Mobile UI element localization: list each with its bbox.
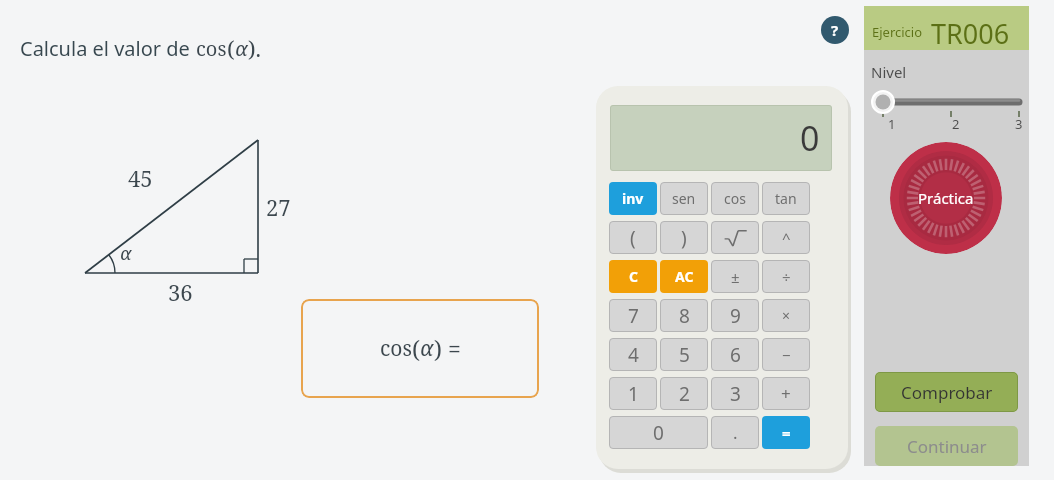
button[interactable]: 4 — [609, 338, 657, 371]
staticText: 2 — [679, 381, 690, 407]
staticText: 6 — [730, 342, 741, 368]
button[interactable]: Ayuda — [821, 16, 849, 44]
button[interactable]: 3 — [711, 377, 759, 410]
staticText: 3 — [730, 381, 741, 407]
staticText: ^ — [782, 228, 791, 248]
staticText: cos — [380, 334, 412, 363]
staticText: sen — [672, 189, 696, 208]
staticText: α — [120, 241, 132, 266]
button[interactable]: 8 — [660, 299, 708, 332]
staticText: ) — [681, 225, 687, 251]
staticText: C — [629, 267, 638, 286]
button[interactable]: C — [609, 260, 657, 293]
button[interactable]: ) — [660, 221, 708, 254]
staticText: 9 — [730, 303, 741, 329]
staticText: ( — [412, 333, 420, 364]
staticText: Práctica — [918, 188, 974, 208]
staticText: 45 — [128, 163, 153, 193]
staticText: ± — [731, 267, 740, 287]
staticText: α — [235, 35, 248, 62]
button[interactable]: − — [762, 338, 810, 371]
staticText: AC — [675, 267, 694, 286]
staticText: Ejercicio — [872, 23, 923, 41]
button[interactable]: + — [762, 377, 810, 410]
button[interactable]: ^ — [762, 221, 810, 254]
staticText: 0 — [800, 115, 820, 161]
staticText: 1 — [628, 381, 639, 407]
staticText: × — [782, 306, 791, 325]
button[interactable]: 7 — [609, 299, 657, 332]
button[interactable]: 9 — [711, 299, 759, 332]
button[interactable]: = — [762, 416, 810, 449]
button[interactable]: . — [711, 416, 759, 449]
button[interactable]: tan — [762, 182, 810, 215]
button[interactable]: Raíz cuadrada — [711, 221, 759, 254]
staticText: Nivel — [871, 62, 907, 82]
staticText: ÷ — [782, 267, 791, 287]
button[interactable]: Continuar — [875, 426, 1018, 466]
button[interactable]: Nivel — [874, 90, 1024, 130]
button[interactable]: cos — [301, 299, 539, 398]
button[interactable]: ÷ — [762, 260, 810, 293]
button[interactable]: 0 — [609, 416, 708, 449]
staticText: = — [782, 423, 791, 443]
button[interactable]: 1 — [609, 377, 657, 410]
staticText: ( — [630, 225, 636, 251]
button[interactable]: inv — [609, 182, 657, 215]
button[interactable]: ( — [609, 221, 657, 254]
button[interactable]: AC — [660, 260, 708, 293]
button[interactable]: × — [762, 299, 810, 332]
staticText: cos — [724, 189, 746, 208]
staticText: 4 — [628, 342, 639, 368]
button[interactable]: 5 — [660, 338, 708, 371]
staticText: 1 — [888, 115, 896, 133]
staticText: 2 — [952, 115, 960, 133]
staticText: ) = — [434, 333, 461, 364]
button[interactable]: ± — [711, 260, 759, 293]
staticText: ( — [227, 33, 235, 63]
staticText: 7 — [628, 303, 639, 329]
staticText: 27 — [266, 192, 291, 222]
staticText: + — [781, 382, 791, 405]
staticText: ). — [248, 33, 262, 63]
staticText: Comprobar — [901, 381, 993, 404]
staticText: 36 — [168, 277, 193, 307]
staticText: TR006 — [931, 15, 1010, 52]
button[interactable]: Práctica — [890, 142, 1002, 254]
staticText: ? — [831, 20, 839, 40]
staticText: Calcula el valor de — [20, 35, 196, 62]
staticText: inv — [622, 189, 644, 208]
button[interactable]: cos — [711, 182, 759, 215]
button[interactable]: sen — [660, 182, 708, 215]
staticText: − — [782, 345, 791, 365]
button[interactable]: Comprobar — [875, 372, 1018, 412]
staticText: Continuar — [907, 435, 987, 458]
staticText: α — [420, 334, 434, 363]
button[interactable]: 6 — [711, 338, 759, 371]
staticText: . — [733, 421, 738, 444]
staticText: 5 — [679, 342, 690, 368]
staticText: 8 — [679, 303, 690, 329]
staticText: 3 — [1015, 115, 1023, 133]
staticText: tan — [775, 189, 797, 208]
staticText: cos — [196, 35, 227, 62]
staticText: 0 — [653, 420, 664, 446]
button[interactable]: 2 — [660, 377, 708, 410]
